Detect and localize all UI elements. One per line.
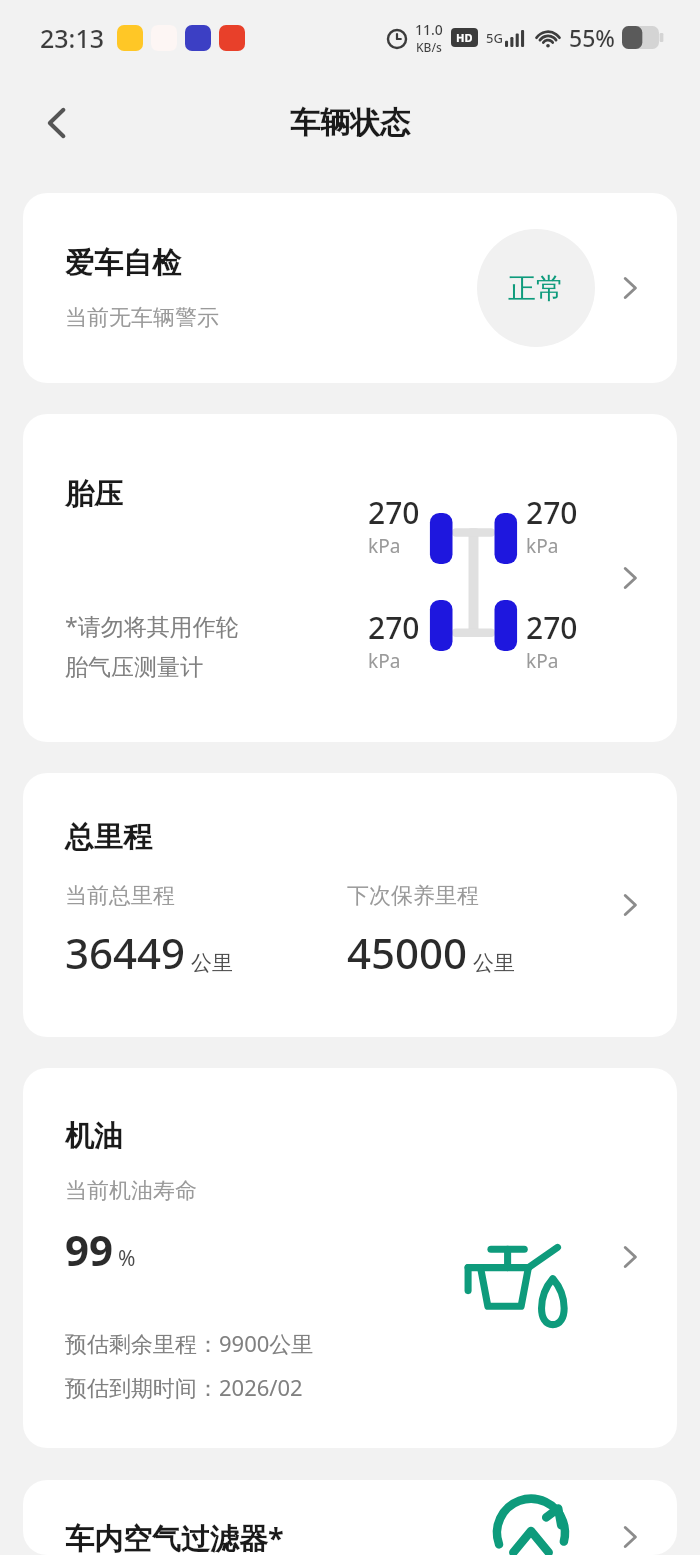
staticText: 预估到期时间：2026/02 (65, 1372, 303, 1402)
button[interactable]: 爱车自检 (23, 193, 677, 383)
staticText: 当前总里程 (65, 882, 175, 910)
staticText: 下次保养里程 (347, 882, 479, 910)
staticText: 胎气压测量计 (65, 653, 203, 682)
button[interactable]: 车内空气过滤器* (23, 1480, 677, 1555)
staticText: 55% (569, 22, 615, 53)
staticText: 预估剩余里程：9900公里 (65, 1328, 314, 1358)
staticText: 45000 (347, 924, 468, 981)
staticText: 公里 (191, 950, 233, 976)
staticText: 总里程 (65, 819, 152, 856)
staticText: 车辆状态 (290, 104, 410, 142)
staticText: 正常 (508, 271, 564, 306)
staticText: 36449 (65, 924, 186, 981)
staticText: 当前机油寿命 (65, 1177, 197, 1205)
staticText: 公里 (473, 950, 515, 976)
staticText: 胎压 (65, 476, 123, 513)
button[interactable]: Back (26, 92, 88, 154)
staticText: 11.0 (415, 20, 443, 39)
staticText: 23:13 (40, 21, 105, 55)
staticText: 机油 (65, 1118, 123, 1155)
staticText: 270 (368, 607, 420, 648)
staticText: *请勿将其用作轮 (65, 610, 239, 641)
button[interactable]: 总里程 (23, 773, 677, 1037)
button[interactable]: 机油 (23, 1068, 677, 1448)
staticText: 爱车自检 (65, 245, 181, 282)
staticText: 99 (65, 1221, 114, 1278)
staticText: 270 (526, 492, 578, 533)
staticText: kPa (368, 533, 401, 559)
staticText: 车内空气过滤器* (65, 1518, 284, 1555)
staticText: 270 (526, 607, 578, 648)
staticText: 当前无车辆警示 (65, 304, 219, 332)
staticText: 270 (368, 492, 420, 533)
staticText: kPa (368, 648, 401, 674)
button[interactable]: 胎压 (23, 414, 677, 742)
staticText: KB/s (416, 39, 442, 55)
staticText: kPa (526, 648, 559, 674)
staticText: kPa (526, 533, 559, 559)
staticText: HD (456, 30, 473, 45)
staticText: 5G (486, 29, 503, 47)
staticText: % (118, 1244, 136, 1273)
